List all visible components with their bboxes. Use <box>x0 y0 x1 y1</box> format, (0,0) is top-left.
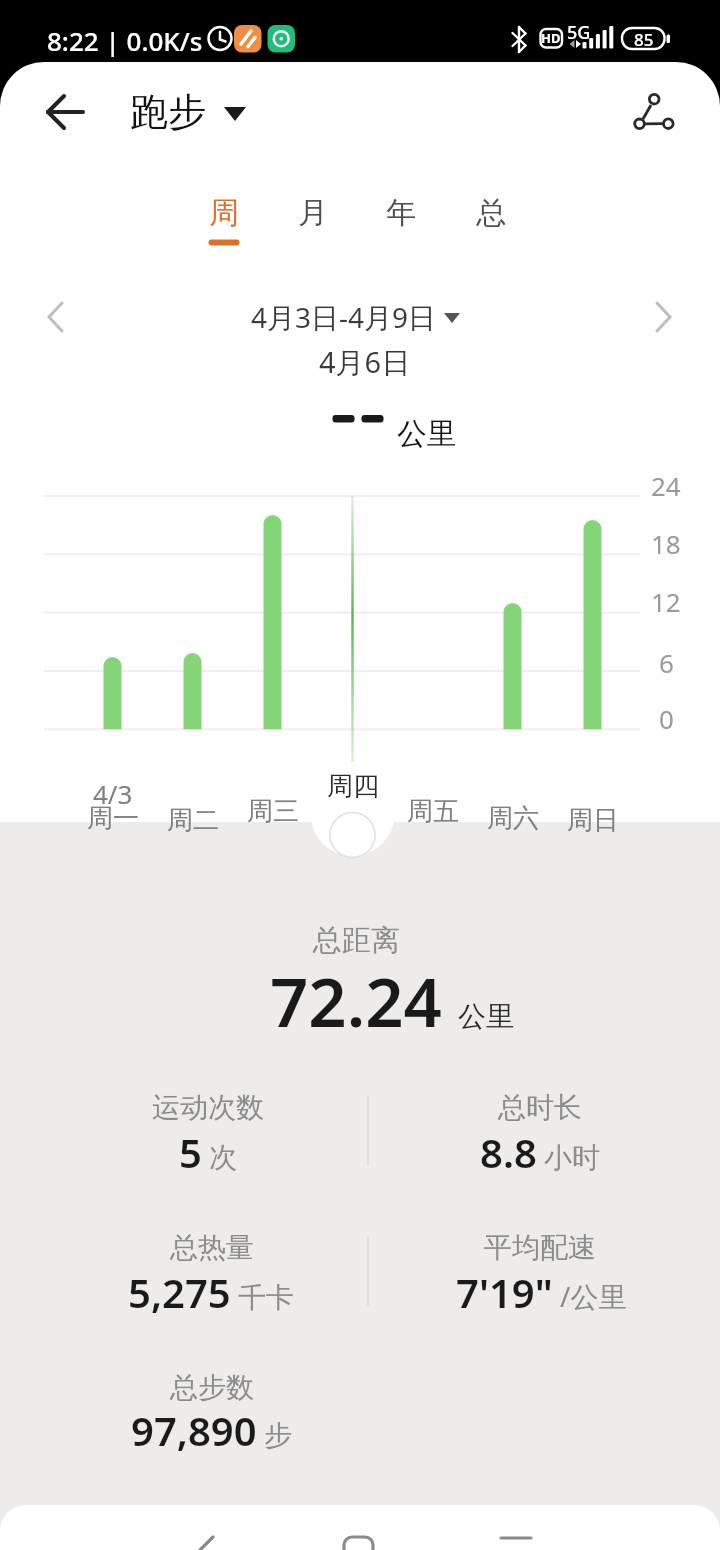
staticText: 运动次数 <box>152 1090 264 1125</box>
staticText: 0 <box>659 701 674 736</box>
staticText: 周 <box>209 194 239 232</box>
staticText: 月 <box>298 194 328 232</box>
button[interactable]: 总 <box>461 183 521 243</box>
staticText: 4/3 <box>93 776 133 811</box>
staticText: HD <box>541 29 561 47</box>
staticText: /公里 <box>560 1277 627 1315</box>
staticText: 8.8 <box>480 1125 537 1179</box>
staticText: 总 <box>476 194 506 232</box>
staticText: 次 <box>209 1140 237 1175</box>
staticText: 周五 <box>407 795 459 828</box>
staticText: 周四 <box>327 770 379 803</box>
staticText: 跑步 <box>130 88 206 136</box>
staticText: 年 <box>386 194 416 232</box>
staticText: 周六 <box>487 802 539 835</box>
staticText: 总时长 <box>498 1090 582 1125</box>
button[interactable] <box>0 1505 720 1550</box>
staticText: 7'19" <box>456 1265 553 1319</box>
staticText: 4月3日-4月9日 <box>251 298 437 336</box>
staticText: 平均配速 <box>484 1230 596 1265</box>
staticText: 5 <box>179 1125 202 1179</box>
staticText: 公里 <box>397 415 457 453</box>
staticText: 总步数 <box>170 1370 254 1405</box>
staticText: 总距离 <box>313 922 400 959</box>
staticText: 8:22 | 0.0K/s <box>47 23 203 58</box>
button[interactable]: 年 <box>371 183 431 243</box>
button[interactable] <box>30 82 100 142</box>
staticText: 总热量 <box>170 1230 254 1265</box>
staticText: 12 <box>651 584 681 619</box>
staticText: 千卡 <box>238 1280 294 1315</box>
staticText: 周三 <box>247 795 299 828</box>
staticText: 周一 <box>87 802 139 835</box>
button[interactable]: 周 <box>194 183 254 243</box>
staticText: 步 <box>264 1418 292 1453</box>
staticText: 85 <box>634 28 654 51</box>
button[interactable] <box>322 805 382 865</box>
staticText: 公里 <box>458 999 514 1034</box>
staticText: 18 <box>651 526 681 561</box>
button[interactable] <box>245 290 465 344</box>
staticText: 4月6日 <box>319 342 411 382</box>
staticText: 5,275 <box>128 1265 231 1319</box>
button[interactable] <box>620 82 690 142</box>
button[interactable] <box>120 82 260 142</box>
staticText: 小时 <box>544 1140 600 1175</box>
staticText: 5G <box>567 20 591 45</box>
staticText: 97,890 <box>131 1403 257 1457</box>
staticText: 24 <box>651 468 681 503</box>
button[interactable] <box>25 290 85 344</box>
staticText: 周二 <box>167 804 219 837</box>
staticText: 周日 <box>567 804 619 837</box>
staticText: 6 <box>659 645 674 680</box>
staticText: 72.24 <box>270 955 442 1046</box>
button[interactable] <box>635 290 695 344</box>
button[interactable]: 月 <box>283 183 343 243</box>
